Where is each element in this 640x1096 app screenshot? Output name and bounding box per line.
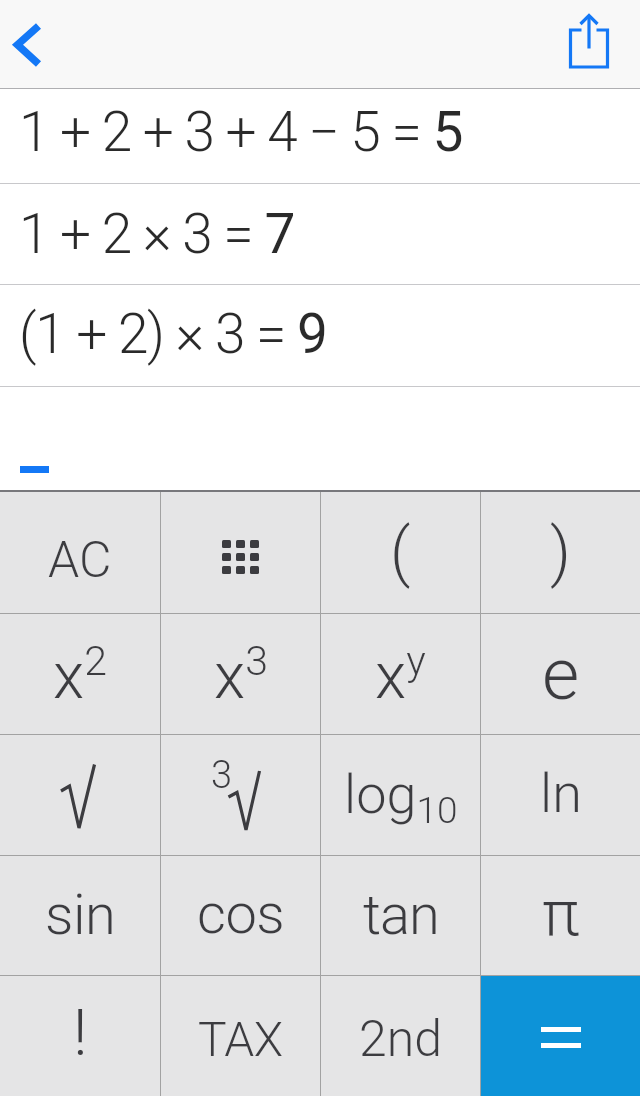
staticText: ) [550, 515, 571, 590]
button[interactable]: xy [321, 614, 480, 734]
button[interactable]: tan [321, 856, 480, 975]
staticText: tan [363, 882, 439, 948]
staticText: sin [45, 882, 116, 948]
button[interactable] [570, 0, 640, 88]
button[interactable]: 3 [161, 735, 320, 855]
button[interactable] [0, 0, 60, 88]
staticText: 2nd [359, 1010, 443, 1069]
button[interactable] [481, 976, 640, 1096]
button[interactable]: 1 + 2 × 3 = 7 [0, 184, 640, 284]
button[interactable]: ! [0, 976, 160, 1096]
staticText: (1 + 2) × 3 = 9 [19, 302, 327, 366]
button[interactable]: π [481, 856, 640, 975]
staticText: AC [48, 531, 112, 590]
button[interactable]: ) [481, 492, 640, 613]
staticText: ( [390, 515, 411, 590]
button[interactable]: AC [0, 492, 160, 613]
button[interactable] [0, 735, 160, 855]
button[interactable]: (1 + 2) × 3 = 9 [0, 285, 640, 386]
staticText: π [542, 877, 580, 951]
button[interactable] [161, 492, 320, 613]
staticText: 1 + 2 + 3 + 4 − 5 = 5 [19, 100, 463, 164]
button[interactable]: ln [481, 735, 640, 855]
staticText: e [542, 632, 580, 716]
staticText: ! [73, 996, 88, 1071]
button[interactable]: 2nd [321, 976, 480, 1096]
staticText: TAX [198, 1011, 283, 1067]
staticText: 1 + 2 × 3 = 7 [19, 202, 294, 266]
staticText: cos [197, 881, 285, 947]
button[interactable]: TAX [161, 976, 320, 1096]
staticText: xy [375, 637, 426, 714]
button[interactable]: ( [321, 492, 480, 613]
button[interactable]: x3 [161, 614, 320, 734]
staticText: x2 [53, 637, 107, 714]
staticText: ln [540, 762, 582, 825]
staticText: 3 [211, 753, 233, 798]
button[interactable]: log10 [321, 735, 480, 855]
button[interactable]: 1 + 2 + 3 + 4 − 5 = 5 [0, 89, 640, 183]
staticText: x3 [214, 637, 268, 714]
button[interactable]: cos [161, 856, 320, 975]
button[interactable]: x2 [0, 614, 160, 734]
staticText: log10 [344, 763, 458, 832]
button[interactable]: sin [0, 856, 160, 975]
button[interactable]: e [481, 614, 640, 734]
